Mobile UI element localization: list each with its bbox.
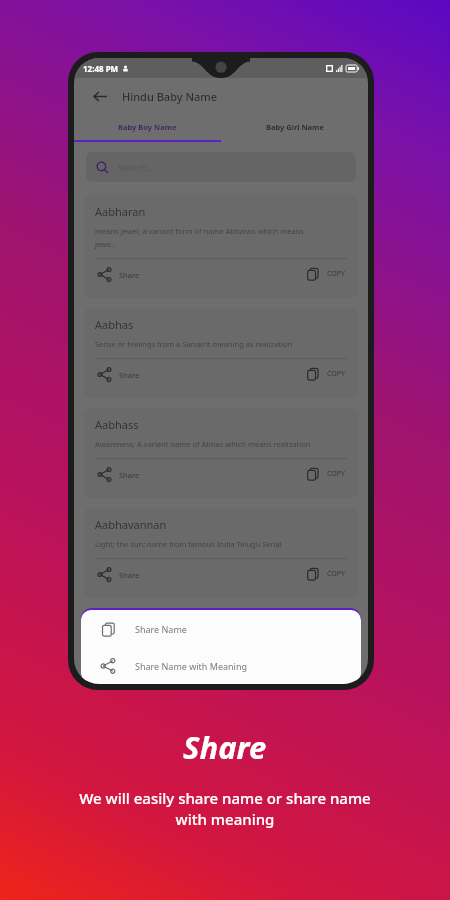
staticText: Aabhas bbox=[95, 317, 134, 332]
staticText: Aabharan bbox=[95, 204, 146, 219]
staticText: means jewel; a variant form of name Abha… bbox=[95, 226, 304, 249]
button[interactable]: Back bbox=[86, 83, 112, 109]
staticText: COPY bbox=[327, 469, 345, 479]
button[interactable]: Aabhavannan bbox=[84, 508, 358, 598]
button[interactable]: COPY bbox=[304, 562, 347, 586]
staticText: Share bbox=[183, 726, 267, 768]
staticText: Search.. bbox=[118, 161, 152, 173]
staticText: Share Name with Meaning bbox=[135, 660, 248, 672]
staticText: Baby Boy Name bbox=[118, 122, 177, 132]
staticText: Sense or feelings from a Sanskrit meanin… bbox=[95, 339, 293, 349]
staticText: We will easily share name or share name … bbox=[79, 788, 371, 830]
button[interactable]: COPY bbox=[304, 362, 347, 386]
button[interactable]: COPY bbox=[304, 262, 347, 286]
staticText: Light; the sun; name from famous India T… bbox=[95, 539, 282, 549]
button[interactable]: Share bbox=[95, 462, 142, 487]
staticText: Share bbox=[119, 370, 140, 380]
staticText: Hindu Baby Name bbox=[122, 89, 217, 104]
button[interactable]: Share Name bbox=[81, 610, 361, 647]
staticText: Aabhass bbox=[95, 417, 139, 432]
staticText: COPY bbox=[327, 269, 345, 279]
button[interactable]: Search.. bbox=[86, 152, 356, 182]
button[interactable]: Baby Boy Name bbox=[74, 114, 221, 140]
button[interactable]: Share bbox=[95, 262, 142, 287]
button[interactable]: Aabharan bbox=[84, 195, 358, 298]
staticText: Awareness; A variant name of Abhas which… bbox=[95, 439, 311, 449]
staticText: Share bbox=[119, 470, 140, 480]
button[interactable]: Aabhass bbox=[84, 408, 358, 498]
button[interactable]: Share bbox=[95, 562, 142, 587]
button[interactable]: Aabhas bbox=[84, 308, 358, 398]
staticText: Share bbox=[119, 270, 140, 280]
button[interactable]: Share bbox=[95, 362, 142, 387]
button[interactable]: COPY bbox=[304, 462, 347, 486]
staticText: Baby Girl Name bbox=[266, 122, 324, 132]
staticText: 12:48 PM bbox=[83, 63, 119, 74]
button[interactable]: Share Name with Meaning bbox=[81, 647, 361, 684]
button[interactable]: Baby Girl Name bbox=[221, 114, 368, 140]
staticText: COPY bbox=[327, 569, 345, 579]
staticText: COPY bbox=[327, 369, 345, 379]
staticText: Share bbox=[119, 570, 140, 580]
staticText: Share Name bbox=[135, 623, 187, 635]
staticText: Aabhavannan bbox=[95, 517, 167, 532]
